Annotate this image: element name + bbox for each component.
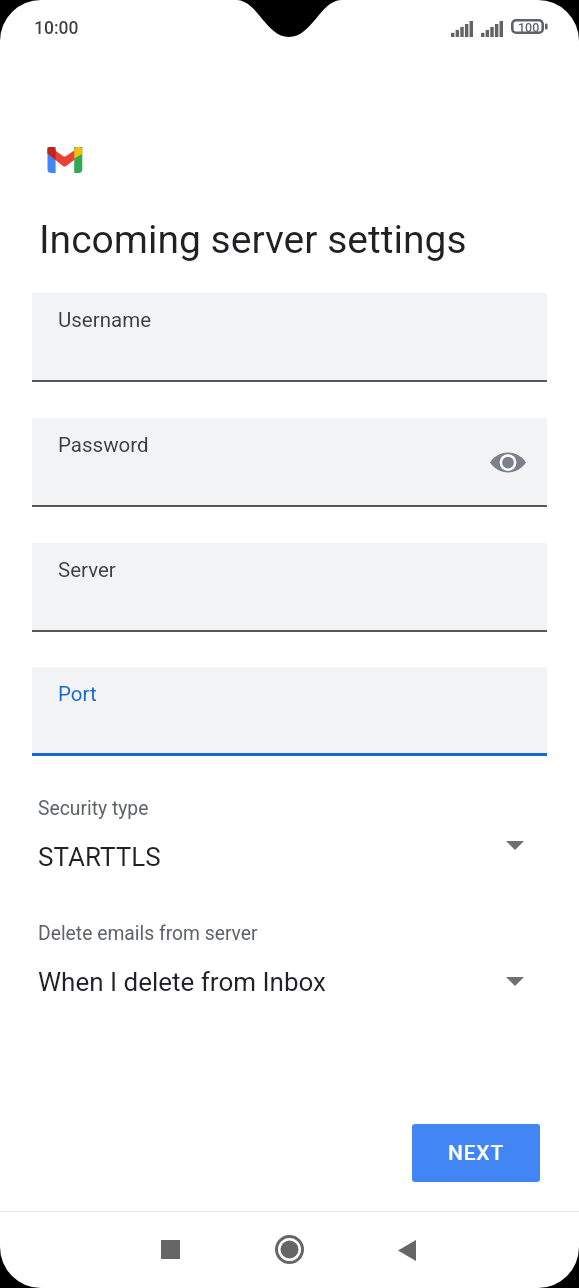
- staticText: NEXT: [448, 1141, 505, 1166]
- button[interactable]: Home: [263, 1223, 315, 1275]
- staticText: Security type: [38, 797, 149, 820]
- button[interactable]: Show password: [486, 440, 530, 484]
- staticText: 100: [518, 20, 540, 35]
- staticText: Delete emails from server: [38, 922, 258, 945]
- staticText: 10:00: [34, 18, 79, 39]
- button[interactable]: Password: [32, 418, 547, 507]
- button[interactable]: Delete emails from server: [0, 922, 579, 1001]
- button[interactable]: Recent apps: [144, 1223, 196, 1275]
- button[interactable]: NEXT: [412, 1124, 540, 1182]
- staticText: STARTTLS: [38, 842, 161, 872]
- button[interactable]: Server: [32, 543, 547, 632]
- staticText: When I delete from Inbox: [38, 967, 326, 997]
- staticText: Incoming server settings: [39, 217, 467, 263]
- staticText: Username: [58, 308, 152, 332]
- button[interactable]: Security type: [0, 797, 579, 865]
- button[interactable]: Username: [32, 293, 547, 382]
- staticText: Port: [58, 682, 97, 706]
- button[interactable]: Back: [381, 1224, 433, 1276]
- button[interactable]: Port: [32, 667, 547, 756]
- staticText: Server: [58, 558, 116, 582]
- staticText: Password: [58, 433, 149, 457]
